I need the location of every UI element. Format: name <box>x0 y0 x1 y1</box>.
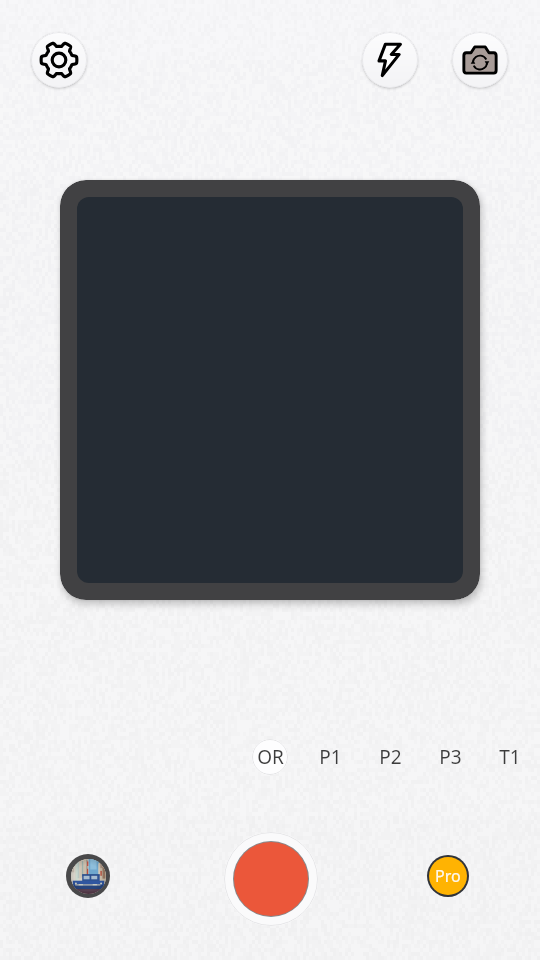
staticText: OR <box>257 744 284 770</box>
staticText: P3 <box>439 744 462 770</box>
button[interactable]: Flash <box>362 32 418 88</box>
button[interactable]: Take photo <box>224 832 318 926</box>
staticText: Pro <box>435 865 461 887</box>
button[interactable]: P3 <box>420 735 480 779</box>
button[interactable]: P2 <box>360 735 420 779</box>
button[interactable]: P1 <box>300 735 360 779</box>
button[interactable]: Gallery <box>66 854 110 898</box>
staticText: P1 <box>319 744 342 770</box>
button[interactable]: Switch camera <box>452 32 508 88</box>
button[interactable]: Settings <box>31 32 87 88</box>
button[interactable]: T1 <box>480 735 540 779</box>
button[interactable]: OR <box>240 735 300 779</box>
staticText: T1 <box>499 744 521 770</box>
button[interactable]: Pro mode <box>427 855 469 897</box>
staticText: P2 <box>379 744 402 770</box>
